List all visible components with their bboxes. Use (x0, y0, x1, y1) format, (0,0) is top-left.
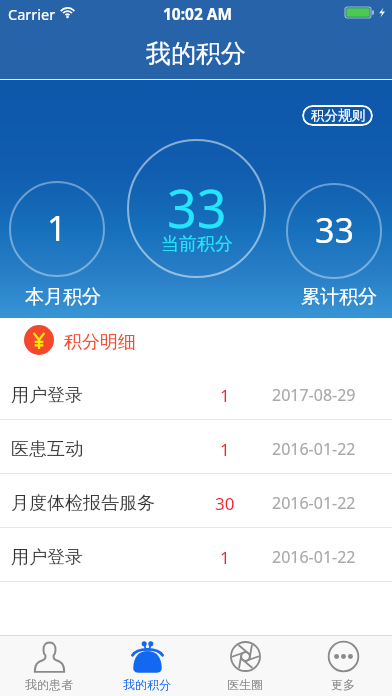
staticText: 我的患者 (25, 677, 73, 692)
staticText: 30 (215, 492, 235, 515)
staticText: 我的积分 (123, 677, 171, 692)
staticText: 2016-01-22 (272, 492, 356, 514)
button[interactable]: More (294, 636, 392, 696)
staticText: 更多 (331, 677, 355, 692)
staticText: 积分规则 (311, 107, 365, 124)
staticText: 1 (220, 546, 230, 569)
staticText: 2016-01-22 (272, 438, 356, 460)
staticText: 2016-01-22 (272, 546, 356, 568)
staticText: 当前积分 (161, 233, 233, 256)
staticText: 1 (47, 205, 67, 251)
staticText: 33 (167, 172, 227, 243)
staticText: 10:02 AM (163, 3, 233, 24)
staticText: 用户登录 (11, 384, 83, 407)
button[interactable]: 积分规则 (302, 105, 373, 126)
staticText: 月度体检报告服务 (11, 492, 155, 515)
staticText: Carrier (8, 4, 56, 24)
button[interactable]: Points detail (24, 325, 54, 355)
staticText: 33 (315, 207, 354, 253)
button[interactable]: 用户登录 (0, 528, 392, 582)
button[interactable]: 医患互动 (0, 420, 392, 474)
button[interactable]: 月度体检报告服务 (0, 474, 392, 528)
staticText: 我的积分 (146, 38, 246, 69)
button[interactable]: My patients (0, 636, 98, 696)
button[interactable]: My points (98, 636, 196, 696)
staticText: 累计积分 (301, 285, 377, 309)
staticText: 积分明细 (64, 331, 136, 354)
staticText: 本月积分 (25, 285, 101, 309)
staticText: 2017-08-29 (272, 384, 356, 406)
staticText: 1 (220, 438, 230, 461)
button[interactable]: 用户登录 (0, 366, 392, 420)
staticText: 1 (220, 384, 230, 407)
staticText: 用户登录 (11, 546, 83, 569)
button[interactable]: Doctor circle (196, 636, 294, 696)
staticText: 医患互动 (11, 438, 83, 461)
staticText: 医生圈 (227, 677, 263, 692)
